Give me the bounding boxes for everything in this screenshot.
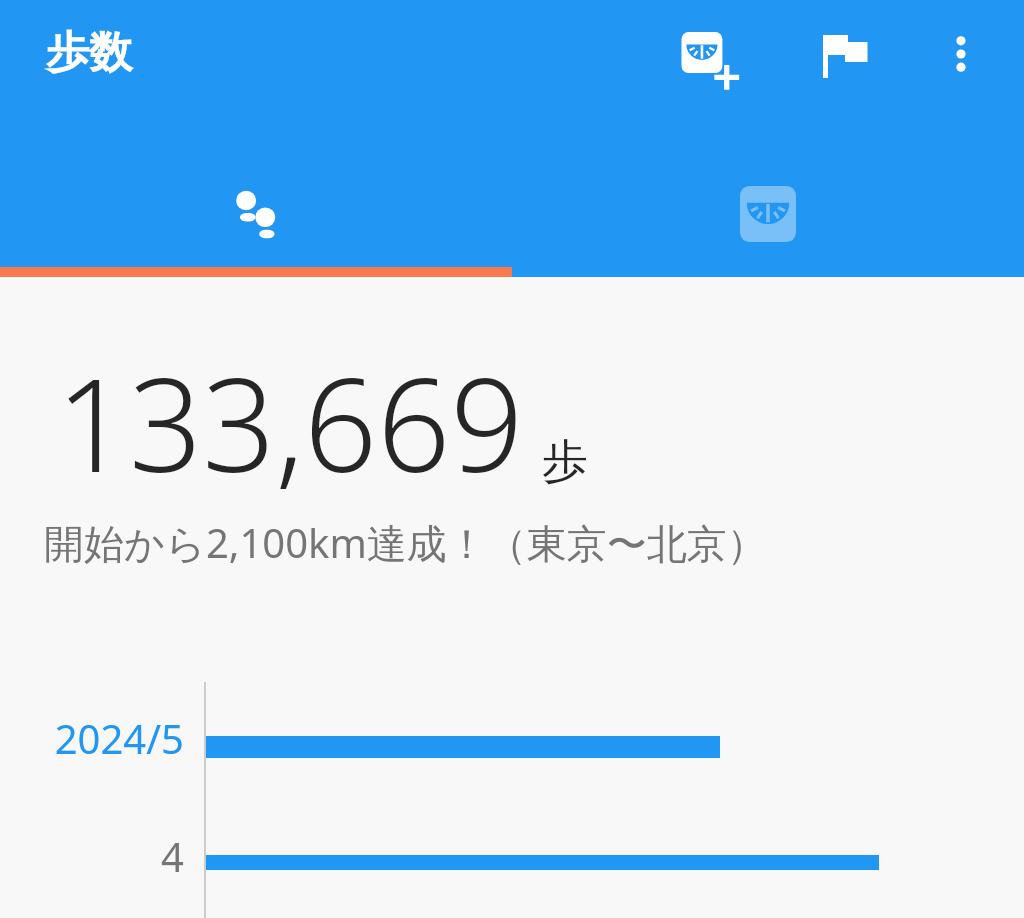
staticText: 歩 (542, 433, 588, 491)
staticText: 歩数 (46, 26, 132, 80)
button[interactable]: 歩数 (0, 159, 512, 268)
button[interactable]: その他のオプション (921, 14, 1001, 94)
staticText: 2024/5 (14, 711, 184, 765)
button[interactable]: 体重 (512, 159, 1024, 268)
button[interactable]: 体重を記録 (664, 14, 756, 106)
staticText: 133,669 (56, 335, 524, 509)
staticText: 開始から2,100km達成！（東京〜北京） (44, 515, 767, 570)
button[interactable]: 目標 (803, 14, 887, 98)
staticText: 4 (14, 829, 184, 883)
